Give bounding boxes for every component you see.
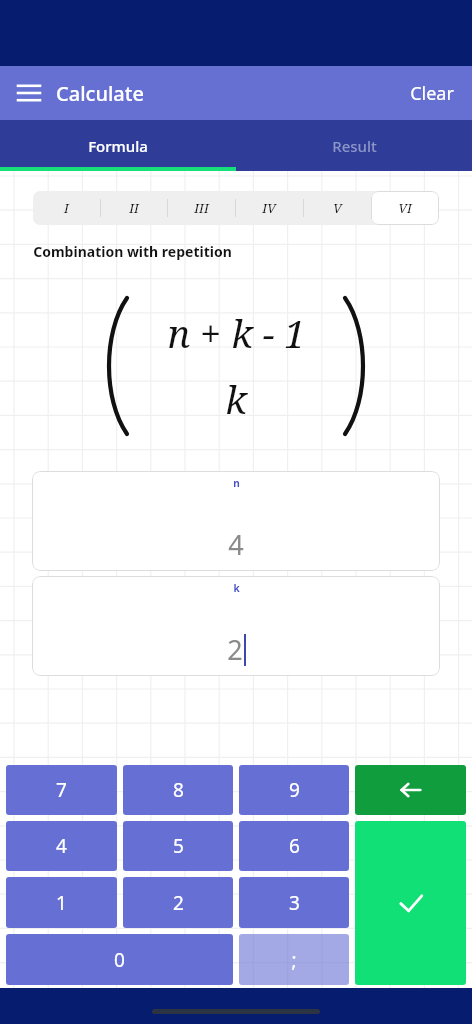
- button[interactable]: Open navigation menu: [8, 72, 50, 114]
- button[interactable]: VI: [371, 191, 439, 225]
- staticText: 9: [289, 777, 300, 803]
- staticText: ;: [291, 947, 297, 973]
- staticText: 3: [289, 890, 300, 916]
- staticText: VI: [398, 199, 412, 217]
- staticText: Combination with repetition: [33, 242, 232, 261]
- button[interactable]: Clear: [392, 71, 472, 116]
- staticText: 4: [56, 833, 67, 859]
- staticText: 8: [173, 777, 184, 803]
- staticText: II: [129, 199, 139, 217]
- button[interactable]: ;: [239, 934, 349, 985]
- staticText: IV: [262, 199, 276, 217]
- button[interactable]: IV: [235, 191, 303, 225]
- button[interactable]: 8: [123, 765, 233, 815]
- staticText: III: [194, 199, 209, 217]
- staticText: Calculate: [56, 80, 144, 107]
- button[interactable]: II: [100, 191, 167, 225]
- staticText: Result: [332, 136, 377, 156]
- button[interactable]: 4: [6, 821, 117, 871]
- staticText: n: [233, 476, 240, 490]
- staticText: Clear: [410, 81, 454, 106]
- button[interactable]: k: [32, 576, 440, 676]
- button[interactable]: 1: [6, 877, 117, 928]
- staticText: 0: [114, 947, 125, 973]
- button[interactable]: Confirm: [355, 821, 466, 985]
- button[interactable]: Result: [236, 120, 472, 171]
- button[interactable]: 6: [239, 821, 349, 871]
- staticText: 1: [56, 890, 67, 916]
- staticText: 5: [173, 833, 184, 859]
- button[interactable]: V: [303, 191, 371, 225]
- button[interactable]: 9: [239, 765, 349, 815]
- button[interactable]: I: [33, 191, 100, 225]
- button[interactable]: III: [167, 191, 235, 225]
- button[interactable]: 7: [6, 765, 117, 815]
- button[interactable]: Backspace: [355, 765, 466, 815]
- staticText: V: [333, 199, 342, 217]
- staticText: k: [225, 373, 247, 425]
- staticText: 2: [173, 890, 184, 916]
- staticText: Formula: [88, 136, 148, 156]
- staticText: 7: [56, 777, 67, 803]
- staticText: 2: [227, 631, 243, 668]
- button[interactable]: 5: [123, 821, 233, 871]
- button[interactable]: Formula: [0, 120, 236, 171]
- button[interactable]: 3: [239, 877, 349, 928]
- button[interactable]: 0: [6, 934, 233, 985]
- button[interactable]: n: [32, 471, 440, 571]
- staticText: 6: [289, 833, 300, 859]
- button[interactable]: 2: [123, 877, 233, 928]
- staticText: I: [64, 199, 69, 217]
- staticText: 4: [228, 526, 244, 563]
- staticText: n + k − 1: [167, 307, 306, 359]
- staticText: k: [233, 581, 240, 595]
